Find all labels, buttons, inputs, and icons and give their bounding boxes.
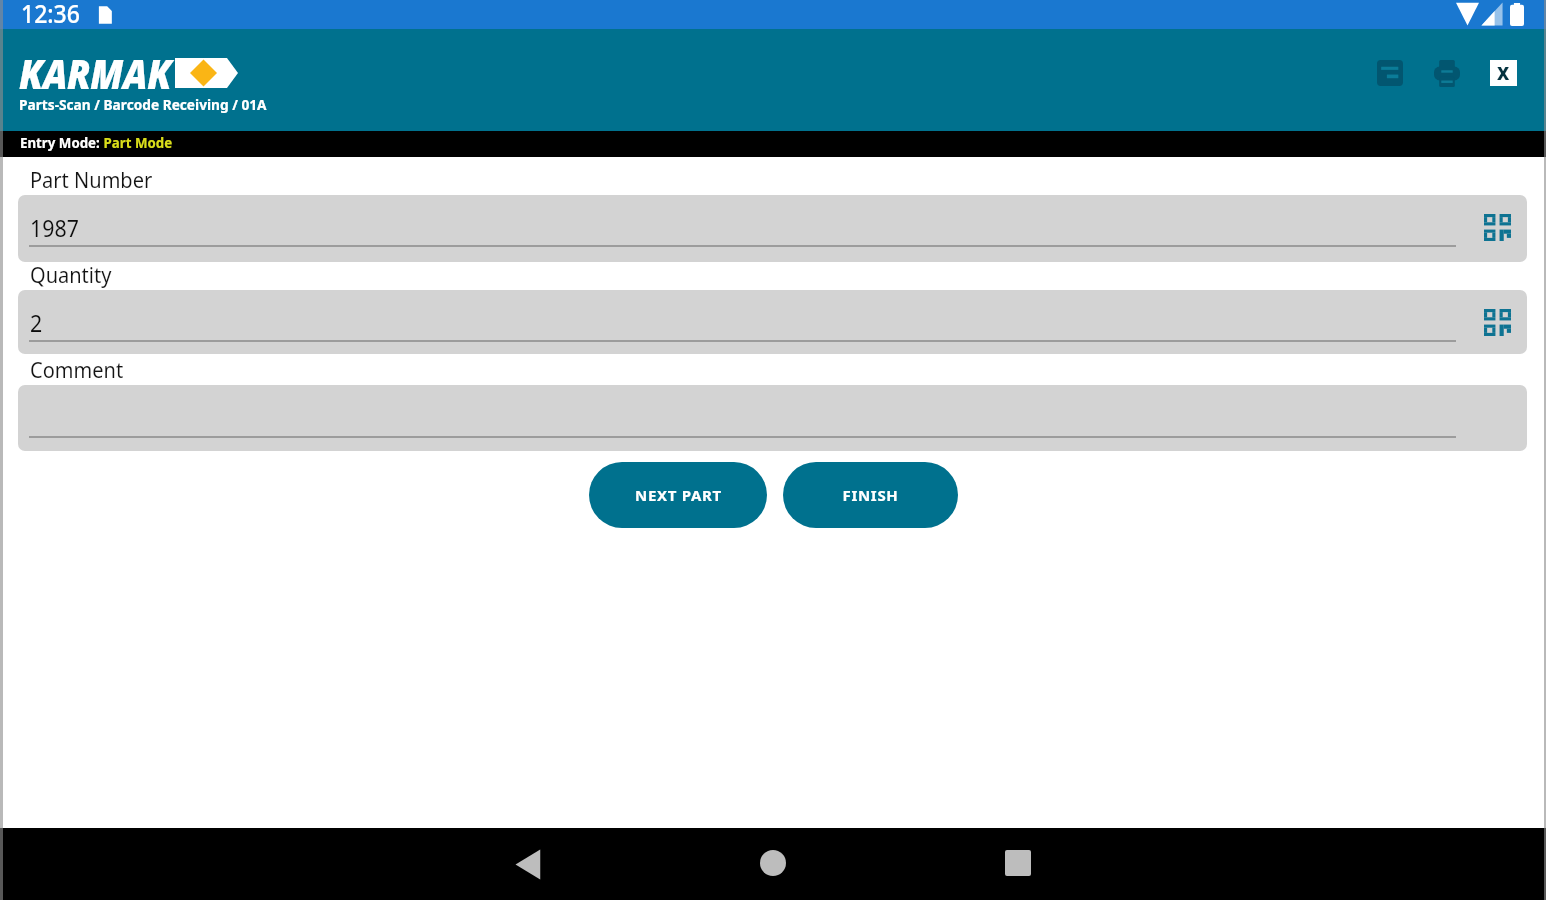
staticText: Comment (30, 354, 123, 385)
staticText: FINISH (842, 485, 899, 505)
staticText: Parts-Scan / Barcode Receiving / 01A (19, 95, 267, 114)
button[interactable]: Print (1425, 51, 1469, 95)
button[interactable]: NEXT PART (589, 462, 767, 528)
staticText: 12:36 (21, 0, 81, 25)
staticText: KARMAK (19, 45, 171, 101)
staticText: 1987 (30, 211, 79, 244)
staticText: Part Number (30, 164, 153, 195)
staticText: Part Mode (104, 133, 173, 152)
staticText: X (1497, 62, 1510, 85)
button[interactable]: Recent apps (994, 839, 1042, 887)
button[interactable]: Scan barcode (1480, 210, 1514, 244)
button[interactable] (18, 385, 1527, 451)
button[interactable]: 1987 (18, 195, 1527, 262)
staticText: 2 (30, 306, 42, 339)
button[interactable]: Keypad (1368, 51, 1412, 95)
button[interactable]: Scan barcode (1480, 305, 1514, 339)
button[interactable]: 2 (18, 290, 1527, 354)
button[interactable]: Home (749, 839, 797, 887)
staticText: Quantity (30, 259, 112, 290)
button[interactable]: Close (1481, 51, 1525, 95)
staticText: NEXT PART (635, 485, 722, 505)
staticText: Entry Mode: (20, 133, 104, 152)
button[interactable]: FINISH (783, 462, 958, 528)
button[interactable]: Back (504, 840, 552, 888)
